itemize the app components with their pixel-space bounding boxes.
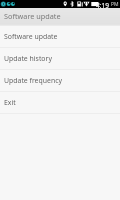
button[interactable]: Update history — [0, 48, 120, 69]
staticText: Exit — [4, 98, 16, 107]
staticText: Software update — [4, 32, 58, 41]
staticText: Software update — [4, 11, 61, 21]
button[interactable]: Software update — [0, 26, 120, 47]
button[interactable]: Exit — [0, 92, 120, 113]
staticText: Update history — [4, 54, 52, 63]
staticText: PM — [111, 1, 119, 8]
button[interactable]: Update frequency — [0, 70, 120, 91]
staticText: Update frequency — [4, 76, 62, 85]
staticText: 4:19 — [96, 1, 110, 9]
